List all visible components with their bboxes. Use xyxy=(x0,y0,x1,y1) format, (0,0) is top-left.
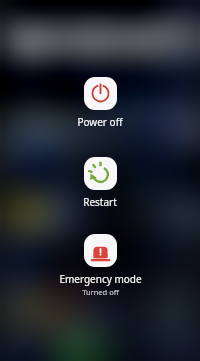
staticText: Turned off xyxy=(82,287,119,297)
button[interactable]: Restart xyxy=(75,157,125,209)
staticText: Restart xyxy=(83,195,117,209)
staticText: Emergency mode xyxy=(59,272,142,286)
staticText: Power off xyxy=(77,115,123,129)
button[interactable]: Emergency mode xyxy=(51,234,150,297)
button[interactable]: Power off xyxy=(69,77,131,129)
